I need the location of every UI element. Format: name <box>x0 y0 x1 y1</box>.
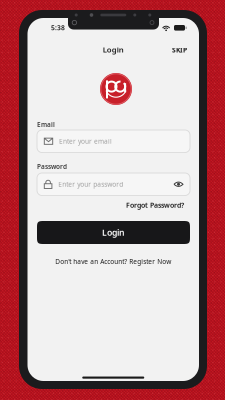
button[interactable]: Enter your email <box>37 130 190 152</box>
button[interactable]: Don't have an Account? Register Now <box>27 257 199 266</box>
staticText: Enter your email <box>59 137 112 146</box>
button[interactable]: Forgot Password? <box>126 200 184 210</box>
staticText: Enter your password <box>58 180 123 189</box>
staticText: Forgot Password? <box>126 200 184 210</box>
staticText: Login <box>102 227 125 238</box>
staticText: 5:38 <box>51 23 65 32</box>
staticText: Login <box>103 44 124 55</box>
staticText: SKIP <box>172 45 187 55</box>
button[interactable]: Login <box>37 221 190 244</box>
button[interactable]: Enter your password <box>37 173 190 195</box>
staticText: Don't have an Account? Register Now <box>55 257 171 266</box>
staticText: Email <box>37 120 55 129</box>
staticText: Password <box>37 162 67 171</box>
button[interactable]: SKIP <box>165 45 193 54</box>
